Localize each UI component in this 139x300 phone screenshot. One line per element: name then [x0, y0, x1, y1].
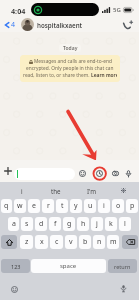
staticText: v — [69, 237, 73, 247]
staticText: z — [25, 237, 29, 247]
button[interactable]: y — [70, 199, 82, 213]
button[interactable]: Back — [3, 18, 17, 32]
staticText: c — [55, 237, 59, 247]
button[interactable]: c — [50, 235, 63, 249]
staticText: Today — [63, 45, 78, 52]
button[interactable]: n — [93, 235, 105, 249]
button[interactable]: s — [21, 217, 33, 231]
staticText: b — [83, 237, 88, 247]
button[interactable]: 123 — [1, 259, 30, 273]
button[interactable]: the — [42, 182, 70, 199]
staticText: n — [97, 237, 102, 247]
button[interactable]: return — [108, 259, 137, 273]
button[interactable]: o — [112, 199, 124, 213]
button[interactable]: v — [65, 235, 77, 249]
staticText: d — [39, 219, 44, 229]
button[interactable]: m — [107, 235, 119, 249]
button[interactable]: l — [119, 217, 131, 231]
button[interactable]: t — [56, 199, 68, 213]
button[interactable]: e — [28, 199, 40, 213]
button[interactable]: h — [77, 217, 89, 231]
button[interactable]: r — [42, 199, 54, 213]
staticText: f — [54, 219, 57, 229]
button[interactable]: Shift — [1, 235, 17, 249]
staticText: I'm — [87, 187, 97, 195]
button[interactable]: Messages and calls are end-to-end — [20, 55, 120, 82]
button[interactable]: Attach — [2, 165, 13, 176]
staticText: 123 — [11, 263, 21, 270]
button[interactable]: Stickers — [77, 168, 88, 179]
staticText: t — [61, 201, 64, 211]
button[interactable]: x — [35, 235, 48, 249]
button[interactable]: I'm — [78, 182, 106, 199]
button[interactable]: space — [31, 259, 106, 273]
staticText: x — [40, 237, 44, 247]
button[interactable]: f — [49, 217, 61, 231]
staticText: hospitalkxaent — [37, 21, 83, 29]
staticText: s — [25, 219, 29, 229]
staticText: g — [67, 219, 72, 229]
staticText: j — [96, 219, 98, 229]
staticText: q — [4, 201, 9, 211]
button[interactable]: j — [91, 217, 103, 231]
button[interactable]: p — [126, 199, 138, 213]
button[interactable]: b — [79, 235, 91, 249]
staticText: read, listen to, or share them. — [23, 72, 90, 79]
button[interactable]: Emoji — [9, 284, 19, 294]
button[interactable]: z — [20, 235, 33, 249]
staticText: r — [47, 201, 50, 211]
staticText: 4:04 — [11, 6, 26, 16]
staticText: p — [130, 201, 135, 211]
staticText: encrypted. Only people in this chat can — [26, 65, 114, 72]
staticText: k — [109, 219, 113, 229]
staticText: l — [124, 219, 126, 229]
button[interactable]: Voice call — [120, 17, 135, 32]
button[interactable]: i — [8, 182, 36, 199]
staticText: 5G — [113, 6, 121, 14]
button[interactable]: i — [98, 199, 110, 213]
button[interactable]: hospitalkxaent — [21, 18, 120, 31]
button[interactable]: q — [1, 199, 12, 213]
staticText: w — [17, 201, 23, 211]
button[interactable]: Camera — [110, 168, 121, 179]
staticText: i — [103, 201, 105, 211]
staticText: Learn more — [91, 72, 117, 79]
staticText: a — [12, 219, 16, 229]
staticText: return — [114, 263, 131, 270]
button[interactable]: d — [35, 217, 47, 231]
staticText: Messages and calls are end-to-end — [34, 58, 112, 65]
button[interactable]: Camera roll — [94, 168, 105, 179]
staticText: o — [116, 201, 121, 211]
button[interactable]: k — [105, 217, 117, 231]
staticText: space — [60, 262, 77, 270]
staticText: m — [110, 237, 117, 247]
button[interactable]: Today — [59, 44, 81, 52]
button[interactable]: u — [84, 199, 96, 213]
staticText: i — [21, 187, 23, 195]
staticText: h — [81, 219, 86, 229]
button[interactable] — [14, 168, 75, 180]
button[interactable]: w — [14, 199, 26, 213]
button[interactable]: a — [8, 217, 19, 231]
button[interactable]: Dictate — [118, 283, 128, 293]
staticText: u — [88, 201, 93, 211]
staticText: e — [32, 201, 36, 211]
button[interactable]: Voice message — [123, 168, 134, 179]
staticText: y — [74, 201, 78, 211]
staticText: 4 — [11, 20, 16, 30]
button[interactable]: Keyboard settings — [119, 186, 128, 195]
button[interactable]: g — [63, 217, 75, 231]
staticText: the — [51, 187, 61, 195]
button[interactable]: Delete — [122, 235, 138, 249]
other: Back — [4, 21, 10, 29]
